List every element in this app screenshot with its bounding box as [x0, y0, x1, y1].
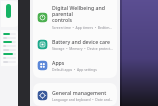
staticText: Screen time • App timers • Bedtime mode: [52, 25, 113, 30]
button[interactable]: Digital Wellbeing and parental controls: [33, 0, 117, 34]
button[interactable]: Battery and device care: [33, 34, 117, 55]
staticText: Apps: [52, 59, 65, 66]
staticText: Battery and device care: [52, 38, 111, 45]
button[interactable]: Apps: [33, 55, 117, 76]
staticText: Default apps • App settings: [52, 67, 97, 72]
staticText: Storage • Memory • Device protection: [52, 46, 113, 51]
staticText: Language and keyboard • Date and time: [52, 97, 113, 102]
staticText: General management: [52, 89, 107, 96]
button[interactable]: General management: [33, 85, 117, 106]
staticText: Digital Wellbeing and parental controls: [52, 4, 113, 24]
